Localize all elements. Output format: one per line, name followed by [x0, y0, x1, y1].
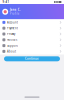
button[interactable]: Notices — [0, 37, 64, 43]
staticText: Profile — [10, 12, 20, 15]
staticText: Continue — [25, 57, 39, 60]
staticText: 9:41 — [3, 0, 10, 4]
button[interactable]: Continue — [4, 56, 60, 61]
staticText: Account — [7, 21, 18, 24]
staticText: Payment — [7, 26, 18, 30]
staticText: Notices — [7, 38, 17, 41]
staticText: About — [7, 50, 16, 53]
button[interactable]: Privacy — [0, 31, 64, 37]
button[interactable]: Payment — [0, 25, 64, 31]
staticText: Privacy — [7, 32, 15, 36]
button[interactable]: Account — [0, 19, 64, 25]
staticText: Jane C. — [10, 8, 21, 11]
button[interactable]: About — [0, 48, 64, 54]
staticText: Support — [7, 44, 18, 47]
button[interactable]: Support — [0, 43, 64, 48]
